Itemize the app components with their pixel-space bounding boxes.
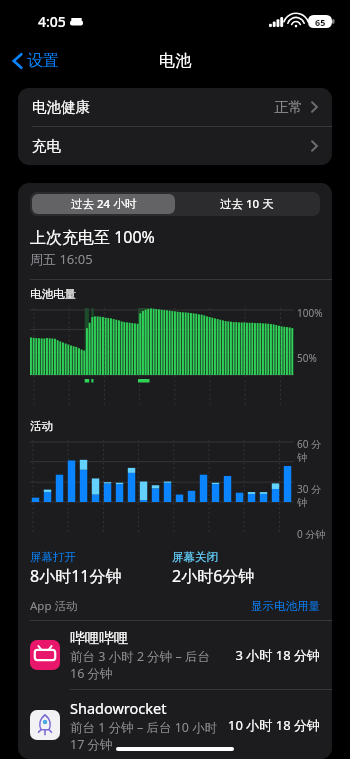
- staticText: 屏幕打开: [30, 550, 76, 564]
- staticText: 电池电量: [30, 287, 76, 301]
- staticText: 显示电池用量: [251, 599, 320, 613]
- staticText: 100%: [297, 306, 323, 320]
- staticText: 8小时11分钟: [30, 565, 122, 587]
- staticText: 30 分钟: [297, 482, 328, 509]
- staticText: 3 小时 18 分钟: [235, 646, 320, 664]
- staticText: 正常: [274, 98, 303, 116]
- staticText: 设置: [27, 51, 59, 71]
- button[interactable]: 设置: [8, 47, 63, 75]
- button[interactable]: 过去 24 小时: [32, 194, 175, 214]
- staticText: 电池健康: [32, 98, 90, 116]
- staticText: 过去 10 天: [220, 196, 274, 212]
- staticText: 2小时6分钟: [172, 565, 255, 587]
- button[interactable]: 哔哩哔哩: [18, 621, 332, 689]
- button[interactable]: 充电: [18, 127, 332, 165]
- staticText: 哔哩哔哩: [70, 629, 128, 647]
- staticText: 65: [315, 16, 326, 28]
- button[interactable]: 过去 10 天: [175, 194, 318, 214]
- button[interactable]: 电池健康: [18, 88, 332, 126]
- staticText: 10 小时 18 分钟: [228, 716, 320, 734]
- staticText: 电池: [159, 51, 191, 71]
- button[interactable]: 显示电池用量: [251, 599, 320, 613]
- staticText: App 活动: [30, 598, 78, 614]
- staticText: 上次充电至 100%: [30, 226, 155, 248]
- staticText: Shadowrocket: [70, 698, 167, 718]
- staticText: 过去 24 小时: [71, 196, 137, 212]
- staticText: 前台 1 分钟 – 后台 10 小时 17 分钟: [70, 719, 218, 751]
- staticText: 60 分钟: [297, 437, 328, 464]
- staticText: 前台 3 小时 2 分钟 – 后台 16 分钟: [70, 648, 211, 681]
- staticText: 屏幕关闭: [172, 550, 218, 564]
- staticText: 充电: [32, 137, 61, 155]
- staticText: 活动: [30, 419, 53, 433]
- button[interactable]: Shadowrocket: [18, 690, 332, 759]
- staticText: 0 分钟: [297, 527, 326, 540]
- staticText: 周五 16:05: [30, 250, 93, 268]
- staticText: 4:05: [38, 12, 66, 31]
- staticText: 50%: [297, 351, 317, 365]
